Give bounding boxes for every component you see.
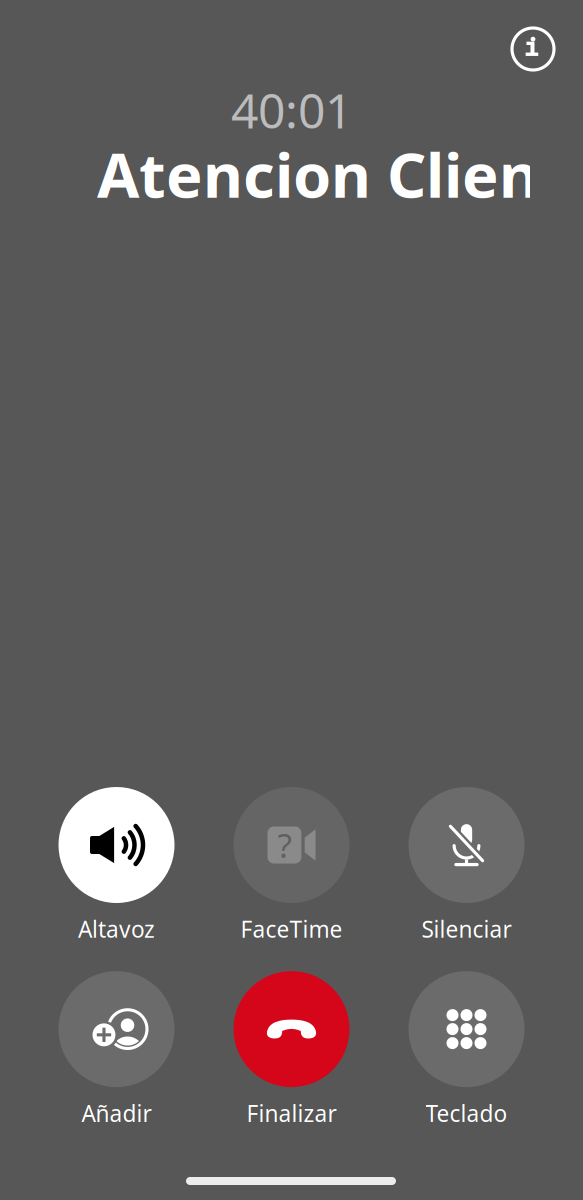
button[interactable]: Teclado [381, 971, 551, 1128]
button[interactable]: Altavoz [31, 787, 201, 944]
staticText: Atencion Cliente [97, 133, 583, 215]
staticText: 40:01 [231, 78, 352, 142]
staticText: Añadir [81, 1098, 151, 1128]
staticText: FaceTime [240, 914, 342, 944]
button[interactable]: Finalizar [206, 971, 376, 1128]
staticText: Altavoz [78, 914, 155, 944]
button[interactable]: Call details [498, 14, 568, 84]
staticText: Silenciar [421, 914, 511, 944]
button[interactable]: ? [206, 787, 376, 944]
staticText: Finalizar [246, 1098, 336, 1128]
staticText: ? [277, 823, 291, 867]
button[interactable]: Silenciar [381, 787, 551, 944]
staticText: Teclado [425, 1098, 507, 1128]
button[interactable]: Añadir [31, 971, 201, 1128]
